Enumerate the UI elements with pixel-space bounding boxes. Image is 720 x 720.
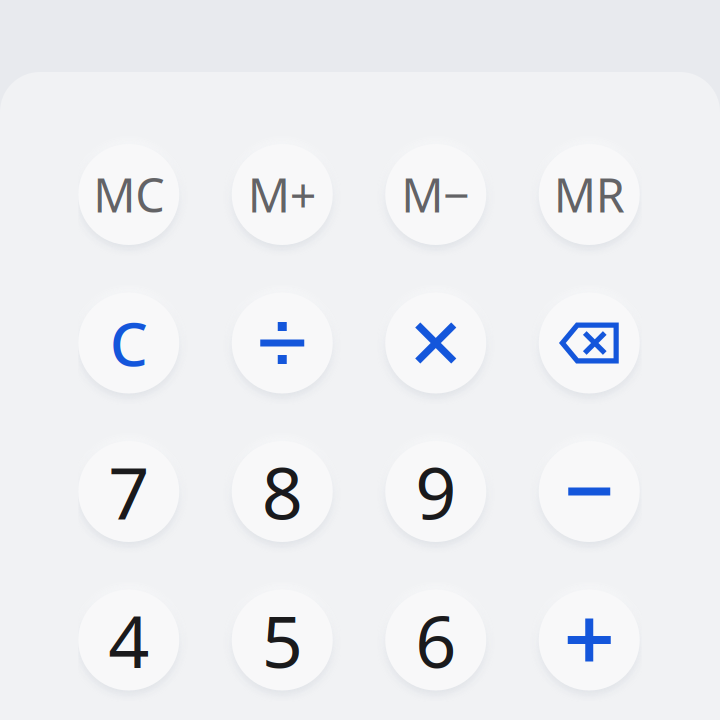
button[interactable]: 5 — [232, 589, 333, 690]
button[interactable]: Divide — [232, 292, 333, 393]
staticText: MR — [554, 163, 625, 225]
button[interactable]: Memory subtract — [385, 144, 486, 245]
button[interactable]: 4 — [78, 589, 179, 690]
button[interactable]: 7 — [78, 441, 179, 542]
staticText: M+ — [248, 163, 317, 225]
button[interactable]: Subtract — [539, 441, 640, 542]
staticText: MC — [93, 163, 164, 225]
button[interactable]: Memory add — [232, 144, 333, 245]
button[interactable]: Clear — [78, 292, 179, 393]
button[interactable]: Memory recall — [539, 144, 640, 245]
button[interactable]: Multiply — [385, 292, 486, 393]
button[interactable]: 8 — [232, 441, 333, 542]
staticText: 8 — [262, 444, 303, 539]
staticText: 6 — [415, 592, 456, 688]
staticText: 5 — [262, 592, 303, 688]
staticText: 9 — [415, 444, 456, 539]
staticText: 4 — [108, 592, 149, 688]
button[interactable]: 6 — [385, 589, 486, 690]
staticText: 7 — [108, 444, 149, 539]
staticText: C — [110, 303, 148, 383]
button[interactable]: Backspace — [539, 292, 640, 393]
button[interactable]: 9 — [385, 441, 486, 542]
button[interactable]: Add — [539, 589, 640, 690]
staticText: M− — [401, 163, 470, 225]
button[interactable]: Memory clear — [78, 144, 179, 245]
